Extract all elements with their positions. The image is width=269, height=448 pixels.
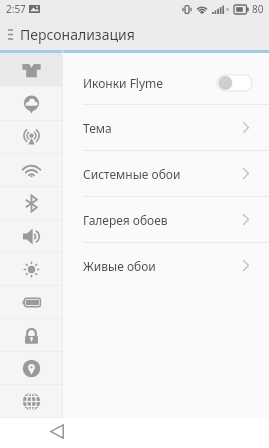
staticText: Живые обои [83,258,156,274]
button[interactable]: Иконки Flyme [63,61,269,104]
staticText: Иконки Flyme [83,75,164,91]
button[interactable]: Display [0,253,63,286]
button[interactable]: Системные обои [63,151,269,196]
staticText: 80 [252,2,264,16]
button[interactable]: Back [42,418,72,444]
button[interactable]: Security [0,319,63,352]
button[interactable]: Location [0,352,63,385]
button[interactable]: Wi-Fi [0,154,63,187]
button[interactable]: Тема [63,105,269,150]
button[interactable]: Галерея обоев [63,197,269,242]
button[interactable]: Bluetooth [0,187,63,220]
staticText: Персонализация [20,25,135,44]
button[interactable]: Живые обои [63,243,269,288]
staticText: Галерея обоев [83,212,168,228]
button[interactable]: Sound [0,220,63,253]
staticText: Системные обои [83,166,181,182]
button[interactable]: Battery [0,286,63,319]
staticText: Тема [83,120,112,136]
button[interactable]: Hotspot [0,121,63,154]
button[interactable]: Menu [0,18,20,50]
button[interactable]: Accounts [0,87,63,121]
staticText: x [226,5,230,13]
button[interactable]: Personalization [0,53,63,87]
staticText: 2:57 [6,2,26,16]
button[interactable]: Language [0,385,63,418]
